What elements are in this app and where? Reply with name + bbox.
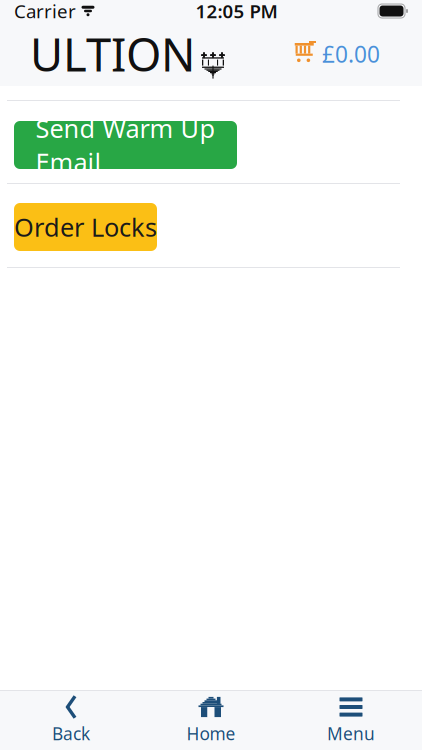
staticText: Back [52, 722, 90, 745]
button[interactable]: Home [141, 691, 281, 749]
staticText: 12:05 PM [195, 0, 277, 23]
staticText: Send Warm Up Email [35, 111, 215, 179]
button[interactable]: Menu [281, 691, 421, 749]
button[interactable]: Order Locks [14, 203, 157, 251]
staticText: Menu [327, 722, 375, 745]
staticText: Order Locks [14, 210, 157, 244]
staticText: ULTION [30, 24, 195, 84]
button[interactable]: Back [1, 691, 141, 749]
staticText: £0.00 [322, 39, 380, 69]
staticText: Home [186, 722, 235, 745]
staticText: Carrier [14, 0, 76, 23]
button[interactable]: Cart, £0.00 [292, 33, 382, 75]
button[interactable]: Send Warm Up Email [14, 121, 237, 169]
